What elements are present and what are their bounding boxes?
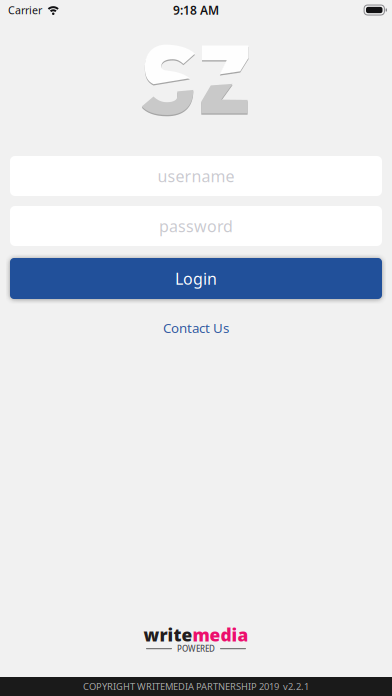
button[interactable]: Login [0,258,392,299]
staticText: write [143,623,192,646]
staticText: Carrier [8,3,42,17]
button[interactable]: Contact Us [151,314,241,342]
staticText: username [157,165,234,187]
staticText: media [192,623,248,646]
staticText: COPYRIGHT WRITEMEDIA PARTNERSHIP 2019 v2… [83,680,309,693]
staticText: Contact Us [163,319,229,337]
staticText: POWERED [177,643,215,654]
staticText: Login [175,268,217,289]
staticText: password [159,215,233,237]
staticText: 9:18 AM [173,2,219,18]
